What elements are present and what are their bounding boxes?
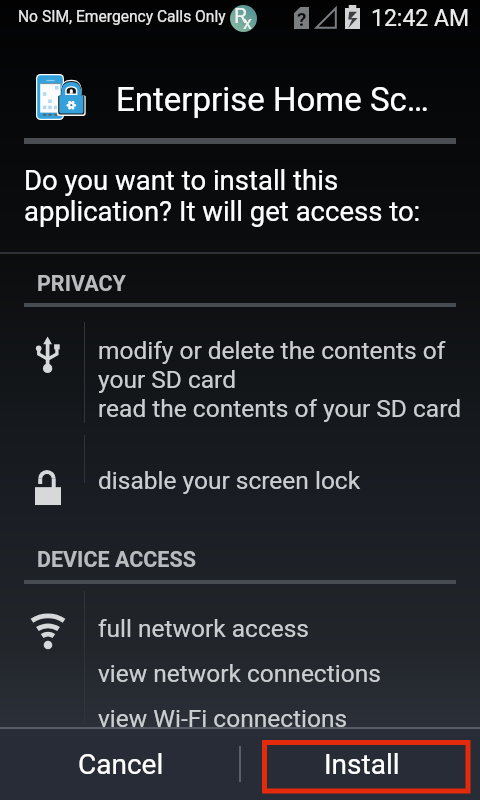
- other: USB storage permission: [34, 334, 62, 376]
- other: Screen lock permission: [35, 470, 61, 505]
- staticText: 12:42 AM: [371, 5, 470, 32]
- staticText: R: [234, 4, 247, 29]
- other: Network permission: [31, 613, 67, 649]
- staticText: Install: [324, 748, 400, 781]
- staticText: Cancel: [78, 748, 164, 781]
- staticText: disable your screen lock: [98, 466, 361, 495]
- staticText: Enterprise Home Sc…: [116, 80, 429, 119]
- button[interactable]: Install: [243, 730, 480, 798]
- staticText: ?: [297, 8, 307, 30]
- staticText: DEVICE ACCESS: [37, 547, 196, 572]
- staticText: No SIM, Emergency Calls Only: [18, 8, 226, 26]
- other: Enterprise Home Screen app icon: [34, 72, 88, 120]
- staticText: full network access view network connect…: [98, 614, 381, 727]
- staticText: Do you want to install this application?…: [24, 164, 421, 228]
- staticText: x: [243, 12, 252, 33]
- staticText: modify or delete the contents of your SD…: [98, 336, 462, 423]
- button[interactable]: Cancel: [1, 730, 240, 798]
- staticText: PRIVACY: [37, 271, 126, 296]
